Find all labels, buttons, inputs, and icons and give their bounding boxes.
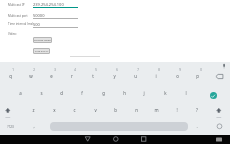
button[interactable]: 7 [130, 65, 146, 75]
staticText: 5 [95, 68, 97, 72]
staticText: t [92, 73, 94, 79]
button[interactable]: w [23, 71, 39, 81]
staticText: 0 [200, 68, 202, 72]
staticText: . [196, 123, 198, 129]
button[interactable]: 5 [88, 65, 104, 75]
staticText: 50000 [33, 13, 45, 18]
button[interactable]: , [26, 121, 42, 131]
button[interactable]: l [178, 88, 194, 98]
button[interactable]: 3 [47, 65, 63, 75]
staticText: ? [196, 107, 198, 113]
staticText: 239.254.254.100 [33, 2, 64, 7]
button[interactable]: i [148, 71, 164, 81]
staticText: Time interval (ms) [8, 22, 34, 26]
button[interactable]: 1 [5, 65, 21, 75]
button[interactable]: 4 [67, 65, 83, 75]
staticText: 500 [33, 22, 40, 27]
button[interactable]: ?123 [2, 122, 18, 132]
button[interactable]: e [43, 71, 59, 81]
staticText: 9 [179, 68, 181, 72]
staticText: c [73, 107, 76, 113]
staticText: z [32, 107, 35, 113]
button[interactable]: m [148, 105, 164, 115]
staticText: ! [176, 107, 178, 113]
staticText: , [33, 123, 35, 129]
staticText: i [155, 73, 157, 79]
staticText: 6 [116, 68, 118, 72]
button[interactable]: s [33, 88, 49, 98]
button[interactable]: x [46, 105, 62, 115]
button[interactable]: z [25, 105, 41, 115]
staticText: 8 [158, 68, 160, 72]
staticText: g [102, 90, 105, 96]
button[interactable] [83, 135, 92, 143]
button[interactable]: 0 [193, 65, 209, 75]
staticText: p [196, 73, 199, 79]
button[interactable]: k [157, 88, 173, 98]
button[interactable]: h [116, 88, 132, 98]
button[interactable]: 50000 [33, 12, 78, 19]
button[interactable]: 8 [151, 65, 167, 75]
staticText: Multicast IP [8, 3, 25, 7]
button[interactable]: f [74, 88, 90, 98]
button[interactable]: d [53, 88, 69, 98]
button[interactable] [210, 92, 217, 99]
button[interactable]: 6 [109, 65, 125, 75]
staticText: SAVE & PLAY [35, 50, 49, 53]
staticText: Video: [8, 32, 17, 36]
button[interactable]: q [2, 71, 18, 81]
button[interactable]: 2 [26, 65, 42, 75]
staticText: s [40, 90, 43, 96]
staticText: 3 [54, 68, 56, 72]
button[interactable]: 500 [33, 21, 78, 28]
staticText: q [9, 73, 12, 79]
staticText: l [185, 90, 187, 96]
button[interactable]: 239.254.254.100 [33, 1, 78, 8]
button[interactable]: ! [169, 105, 185, 115]
button[interactable]: CHOOSE VIDEO [33, 37, 52, 43]
button[interactable] [139, 135, 148, 143]
button[interactable]: SAVE & PLAY [33, 48, 50, 54]
staticText: o [176, 73, 179, 79]
staticText: u [134, 73, 137, 79]
button[interactable]: b [107, 105, 123, 115]
staticText: b [114, 107, 117, 113]
button[interactable]: g [95, 88, 111, 98]
staticText: CHOOSE VIDEO [34, 39, 51, 42]
button[interactable]: 9 [172, 65, 188, 75]
button[interactable]: u [127, 71, 143, 81]
staticText: 7 [137, 68, 139, 72]
staticText: f [81, 90, 83, 96]
button[interactable]: ? [189, 105, 205, 115]
staticText: Multicast port [8, 14, 28, 18]
staticText: w [29, 73, 33, 79]
staticText: k [164, 90, 167, 96]
button[interactable]: p [189, 71, 205, 81]
staticText: y [113, 73, 116, 79]
button[interactable]: j [136, 88, 152, 98]
staticText: e [50, 73, 53, 79]
staticText: x [53, 107, 56, 113]
button[interactable]: a [12, 88, 28, 98]
staticText: 1 [12, 68, 14, 72]
staticText: 4 [74, 68, 76, 72]
button[interactable]: n [128, 105, 144, 115]
button[interactable]: v [87, 105, 103, 115]
button[interactable]: o [169, 71, 185, 81]
staticText: r [71, 73, 73, 79]
button[interactable] [111, 135, 120, 143]
button[interactable]: y [106, 71, 122, 81]
staticText: j [143, 90, 145, 96]
button[interactable]: t [85, 71, 101, 81]
staticText: v [94, 107, 97, 113]
staticText: h [123, 90, 126, 96]
staticText: a [19, 90, 22, 96]
button[interactable]: r [64, 71, 80, 81]
button[interactable]: c [66, 105, 82, 115]
staticText: 2 [33, 68, 35, 72]
staticText: d [60, 90, 63, 96]
staticText: ?123 [7, 125, 14, 129]
staticText: m [154, 107, 159, 113]
